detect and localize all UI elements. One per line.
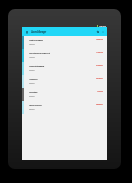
staticText: 11:30 AM	[96, 51, 103, 54]
staticText: 10:30 AM	[96, 38, 103, 41]
staticText: 02:45 PM	[29, 82, 35, 85]
button[interactable]: Move with the gang	[22, 62, 107, 75]
staticText: Presenting	[29, 90, 37, 93]
button[interactable]: Dinner w/Office	[22, 101, 107, 114]
staticText: Promotional Campaign Out	[29, 51, 50, 54]
staticText: 04:15 PM	[29, 95, 35, 98]
staticText: 08:00 PM	[96, 103, 103, 106]
button[interactable]: Search	[96, 30, 100, 34]
staticText: 4:15 PM	[97, 90, 103, 93]
staticText: Move with the gang	[29, 64, 44, 67]
button[interactable]: Menu	[25, 30, 29, 34]
staticText: Dinner w/Office	[29, 103, 42, 106]
staticText: Access Manager	[31, 30, 46, 34]
button[interactable]: Meet Up The Boss!	[22, 36, 107, 49]
staticText: 08:00 PM	[29, 108, 35, 111]
staticText: 02:45 PM	[96, 77, 103, 80]
button[interactable]: Promotional Campaign Out	[22, 49, 107, 62]
staticText: 01:30 PM	[29, 69, 35, 72]
staticText: App launch	[29, 77, 38, 80]
staticText: Meet Up The Boss!	[29, 38, 43, 41]
button[interactable]: App launch	[22, 75, 107, 88]
button[interactable]: More options	[101, 30, 105, 34]
staticText: 11:30 AM	[29, 56, 35, 59]
staticText: 10:30 AM	[29, 43, 35, 46]
button[interactable]: Presenting	[22, 88, 107, 101]
staticText: 1:35 PM	[99, 25, 106, 27]
staticText: 01:30 PM	[96, 64, 103, 67]
